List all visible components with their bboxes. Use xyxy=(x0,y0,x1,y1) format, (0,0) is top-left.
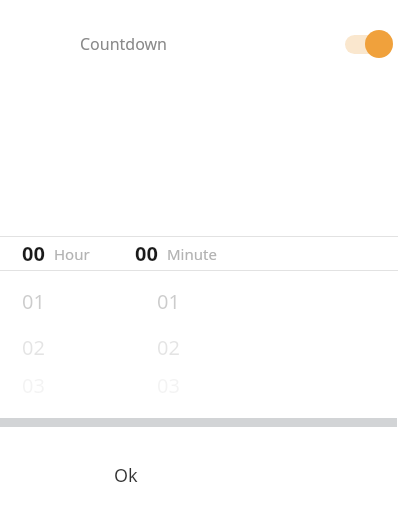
staticText: Ok xyxy=(114,463,138,488)
staticText: 01 xyxy=(157,288,180,314)
button[interactable]: Ok xyxy=(88,455,164,495)
staticText: 00 xyxy=(22,240,45,267)
staticText: Minute xyxy=(167,244,217,264)
button[interactable]: 00 xyxy=(0,237,415,270)
staticText: Countdown xyxy=(80,33,168,55)
staticText: 02 xyxy=(22,334,45,360)
button[interactable]: 02 xyxy=(0,334,415,360)
staticText: 03 xyxy=(22,372,45,398)
staticText: 00 xyxy=(135,240,158,267)
staticText: 02 xyxy=(157,334,180,360)
button[interactable]: 01 xyxy=(0,288,415,314)
staticText: 01 xyxy=(22,288,45,314)
staticText: 03 xyxy=(157,372,180,398)
button[interactable]: Toggle countdown xyxy=(344,30,396,58)
staticText: Hour xyxy=(54,244,90,264)
